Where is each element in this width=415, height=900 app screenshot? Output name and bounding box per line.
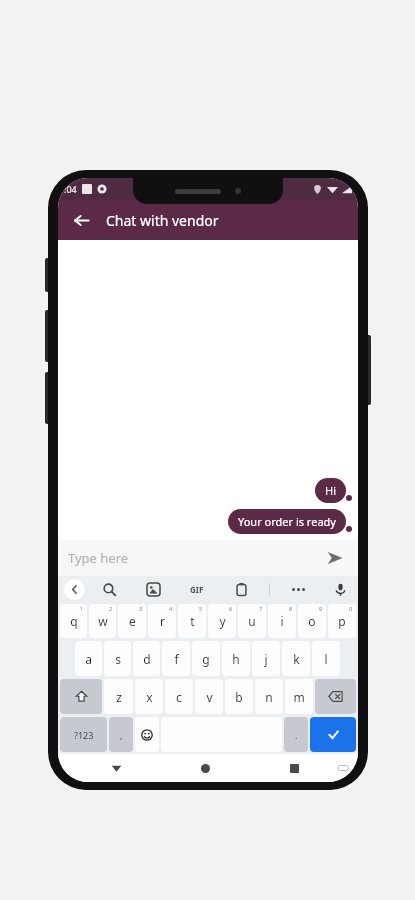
button[interactable]: d: [133, 641, 160, 676]
button[interactable]: Hide keyboard: [103, 755, 129, 781]
staticText: k: [293, 651, 300, 667]
staticText: o: [308, 613, 316, 629]
staticText: ,: [120, 729, 123, 741]
staticText: Hi: [325, 483, 336, 498]
button[interactable]: ?123: [60, 717, 107, 752]
staticText: d: [143, 651, 151, 667]
staticText: n: [265, 689, 273, 705]
staticText: r: [160, 613, 165, 629]
staticText: Type here: [68, 549, 322, 567]
button[interactable]: g: [192, 641, 220, 676]
staticText: 5: [199, 605, 203, 612]
staticText: m: [293, 689, 305, 705]
staticText: 1: [80, 605, 84, 612]
button[interactable]: z: [104, 679, 133, 714]
button[interactable]: m: [285, 679, 313, 714]
button[interactable]: Hi: [315, 478, 346, 503]
button[interactable]: Shift: [60, 679, 102, 714]
staticText: 2: [109, 605, 113, 612]
button[interactable]: u: [238, 604, 266, 638]
button[interactable]: Search: [97, 577, 121, 601]
staticText: a: [85, 651, 92, 667]
button[interactable]: b: [225, 679, 253, 714]
staticText: y: [219, 613, 226, 629]
button[interactable]: h: [222, 641, 250, 676]
staticText: q: [70, 613, 78, 629]
button[interactable]: More: [286, 577, 310, 601]
button[interactable]: y: [208, 604, 236, 638]
staticText: z: [116, 689, 122, 705]
button[interactable]: q: [60, 604, 87, 638]
button[interactable]: Home: [192, 755, 218, 781]
staticText: s: [115, 651, 121, 667]
staticText: ?123: [74, 729, 94, 741]
button[interactable]: GIF: [185, 577, 209, 601]
staticText: .: [295, 729, 298, 741]
button[interactable]: .: [284, 717, 308, 752]
staticText: t: [190, 613, 195, 629]
button[interactable]: r: [148, 604, 176, 638]
button[interactable]: o: [298, 604, 326, 638]
button[interactable]: f: [162, 641, 190, 676]
button[interactable]: Emoji: [135, 717, 159, 752]
staticText: 3: [139, 605, 143, 612]
staticText: e: [129, 613, 136, 629]
button[interactable]: Expand toolbar: [64, 579, 85, 600]
staticText: 7: [259, 605, 263, 612]
button[interactable]: w: [89, 604, 116, 638]
button[interactable]: Type here: [58, 540, 358, 576]
button[interactable]: ,: [109, 717, 133, 752]
staticText: 4: [169, 605, 173, 612]
staticText: w: [98, 613, 108, 629]
button[interactable]: Back: [64, 203, 98, 237]
staticText: p: [338, 613, 346, 629]
button[interactable]: c: [165, 679, 193, 714]
staticText: j: [264, 651, 268, 667]
staticText: f: [174, 651, 179, 667]
button[interactable]: n: [255, 679, 283, 714]
staticText: b: [235, 689, 243, 705]
button[interactable]: j: [252, 641, 280, 676]
button[interactable]: e: [118, 604, 146, 638]
staticText: u: [248, 613, 256, 629]
staticText: x: [146, 689, 153, 705]
button[interactable]: a: [75, 641, 102, 676]
staticText: 9: [319, 605, 323, 612]
button[interactable]: Backspace: [315, 679, 356, 714]
button[interactable]: v: [195, 679, 223, 714]
staticText: Your order is ready: [238, 514, 336, 529]
staticText: i: [280, 613, 284, 629]
staticText: 8: [289, 605, 293, 612]
staticText: h: [232, 651, 240, 667]
button[interactable]: x: [135, 679, 163, 714]
button[interactable]: Recents: [281, 755, 307, 781]
button[interactable]: Clipboard: [229, 577, 253, 601]
button[interactable]: s: [104, 641, 131, 676]
button[interactable]: Voice input: [328, 577, 352, 601]
button[interactable]: Switch keyboard: [332, 757, 354, 779]
button[interactable]: i: [268, 604, 296, 638]
button[interactable]: t: [178, 604, 206, 638]
button[interactable]: Your order is ready: [228, 509, 346, 534]
staticText: c: [176, 689, 182, 705]
button[interactable]: l: [312, 641, 340, 676]
staticText: l: [324, 651, 328, 667]
button[interactable]: Enter: [310, 717, 356, 752]
button[interactable]: Stickers: [141, 577, 165, 601]
button[interactable]: Send: [322, 545, 348, 571]
staticText: g: [202, 651, 210, 667]
button[interactable]: p: [328, 604, 356, 638]
staticText: Chat with vendor: [106, 211, 219, 230]
staticText: v: [206, 689, 213, 705]
staticText: 6: [229, 605, 233, 612]
staticText: GIF: [190, 584, 204, 595]
staticText: :04: [64, 183, 77, 195]
button[interactable]: k: [282, 641, 310, 676]
staticText: 0: [349, 605, 353, 612]
